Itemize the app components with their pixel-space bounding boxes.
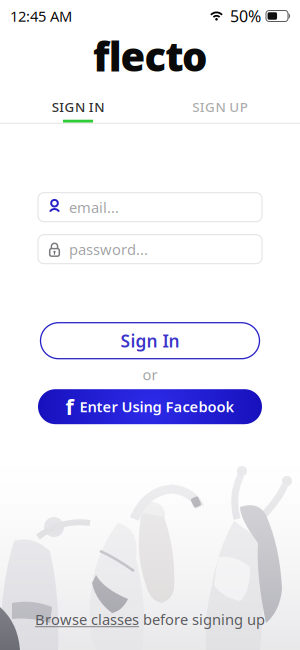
- staticText: before signing up: [139, 609, 265, 629]
- button[interactable]: Browse classes: [35, 609, 265, 629]
- staticText: SIGN UP: [192, 98, 248, 116]
- staticText: 12:45 AM: [10, 6, 72, 26]
- staticText: 50%: [230, 5, 261, 27]
- staticText: Browse classes: [35, 609, 139, 629]
- button[interactable]: SIGN IN: [0, 98, 150, 123]
- staticText: or: [142, 365, 157, 384]
- button[interactable]: f: [38, 389, 262, 424]
- staticText: password...: [69, 239, 148, 259]
- staticText: SIGN IN: [52, 98, 104, 116]
- staticText: f: [65, 392, 73, 421]
- button[interactable]: SIGN UP: [150, 98, 300, 123]
- staticText: Sign In: [120, 329, 179, 352]
- button[interactable]: Email: [38, 193, 262, 222]
- button[interactable]: Password: [38, 235, 262, 264]
- button[interactable]: Sign In: [40, 323, 259, 359]
- staticText: flecto: [93, 29, 207, 82]
- staticText: email...: [69, 197, 119, 217]
- staticText: Enter Using Facebook: [79, 397, 234, 416]
